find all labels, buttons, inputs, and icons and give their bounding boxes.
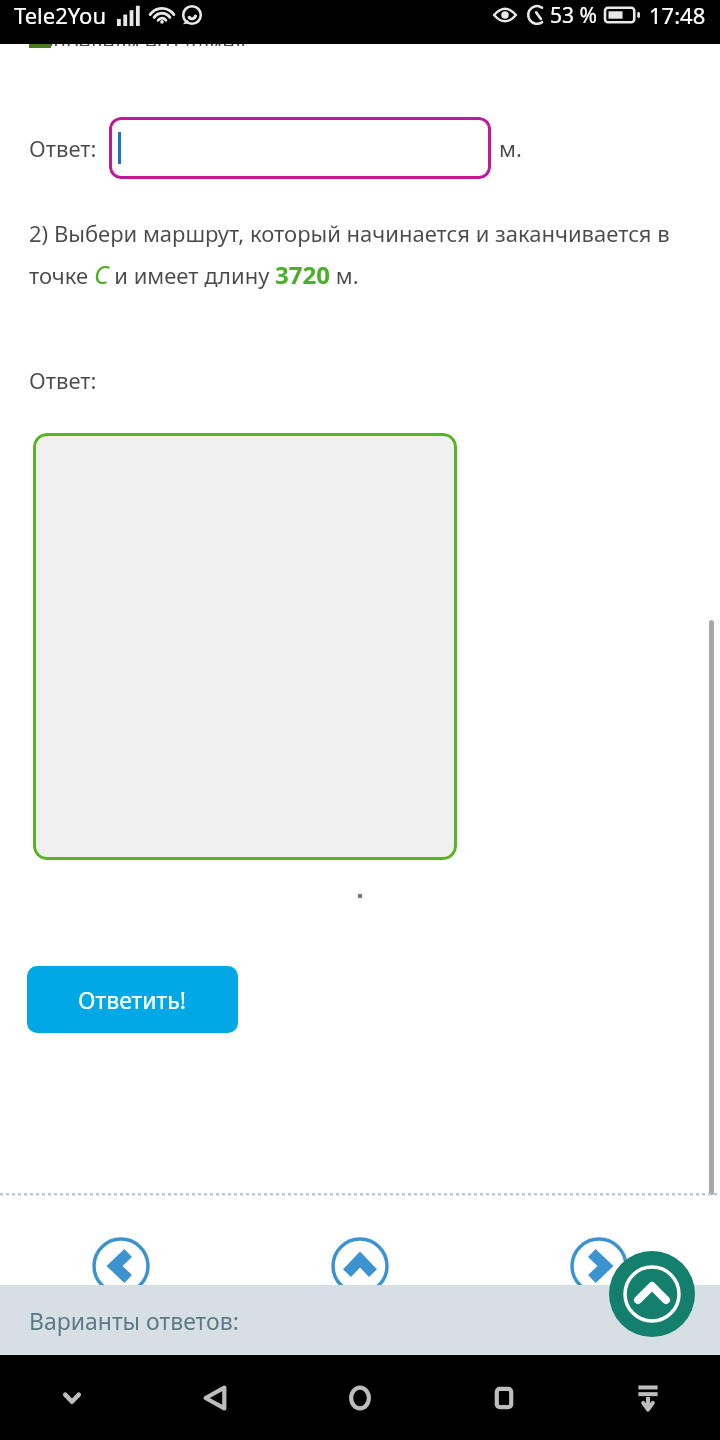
button[interactable]: Ответить! — [27, 966, 238, 1033]
staticText: 17:48 — [649, 0, 706, 30]
button[interactable]: Previous — [92, 1237, 150, 1295]
staticText: Варианты ответов: — [29, 1305, 239, 1336]
button[interactable]: Варианты ответов: — [0, 1285, 720, 1355]
button[interactable]: Home — [288, 1355, 432, 1440]
button[interactable]: Up — [331, 1237, 389, 1295]
staticText: Ответить! — [78, 984, 187, 1015]
staticText: Tele2You — [14, 0, 107, 30]
staticText: Ответ: — [29, 365, 97, 395]
button[interactable]: Hide keyboard — [576, 1355, 720, 1440]
button[interactable] — [33, 433, 457, 860]
button[interactable]: Hide — [0, 1355, 144, 1440]
staticText: ) определи его длину. — [29, 30, 251, 46]
staticText: 2) Выбери маршрут, который начинается и … — [29, 218, 696, 291]
button[interactable]: Back — [144, 1355, 288, 1440]
staticText: Ответ: — [29, 133, 97, 163]
button[interactable] — [109, 117, 491, 179]
button[interactable]: Scroll up — [609, 1251, 695, 1337]
button[interactable]: Next — [570, 1237, 628, 1295]
staticText: 53 % — [550, 1, 597, 30]
staticText: м. — [499, 133, 522, 163]
button[interactable]: Recents — [432, 1355, 576, 1440]
